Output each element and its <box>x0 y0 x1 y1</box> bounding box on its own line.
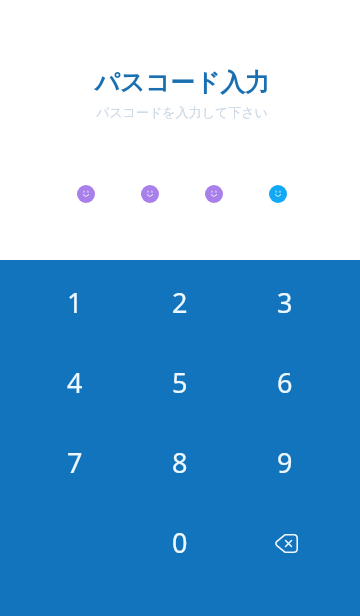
button[interactable]: 3 <box>232 260 337 340</box>
button[interactable]: 5 <box>127 340 232 420</box>
staticText: 9 <box>277 444 293 481</box>
button[interactable]: 2 <box>127 260 232 340</box>
button[interactable]: 4 <box>23 340 127 420</box>
staticText: 8 <box>172 444 188 481</box>
staticText: 5 <box>172 364 188 401</box>
staticText: パスコード入力 <box>2 67 360 98</box>
staticText: 2 <box>172 284 188 321</box>
staticText: 3 <box>277 284 293 321</box>
button[interactable]: 9 <box>232 420 337 500</box>
staticText: 7 <box>67 444 83 481</box>
button[interactable]: 0 <box>127 500 232 580</box>
button[interactable]: 7 <box>23 420 127 500</box>
other: Backspace <box>274 534 298 553</box>
button[interactable]: 8 <box>127 420 232 500</box>
staticText: 0 <box>172 524 188 561</box>
staticText: 1 <box>67 284 83 321</box>
button[interactable]: Delete <box>232 500 337 580</box>
button[interactable]: 1 <box>23 260 127 340</box>
button[interactable]: 6 <box>232 340 337 420</box>
staticText: 6 <box>277 364 293 401</box>
staticText: パスコードを入力して下さい <box>2 104 360 120</box>
staticText: 4 <box>67 364 83 401</box>
